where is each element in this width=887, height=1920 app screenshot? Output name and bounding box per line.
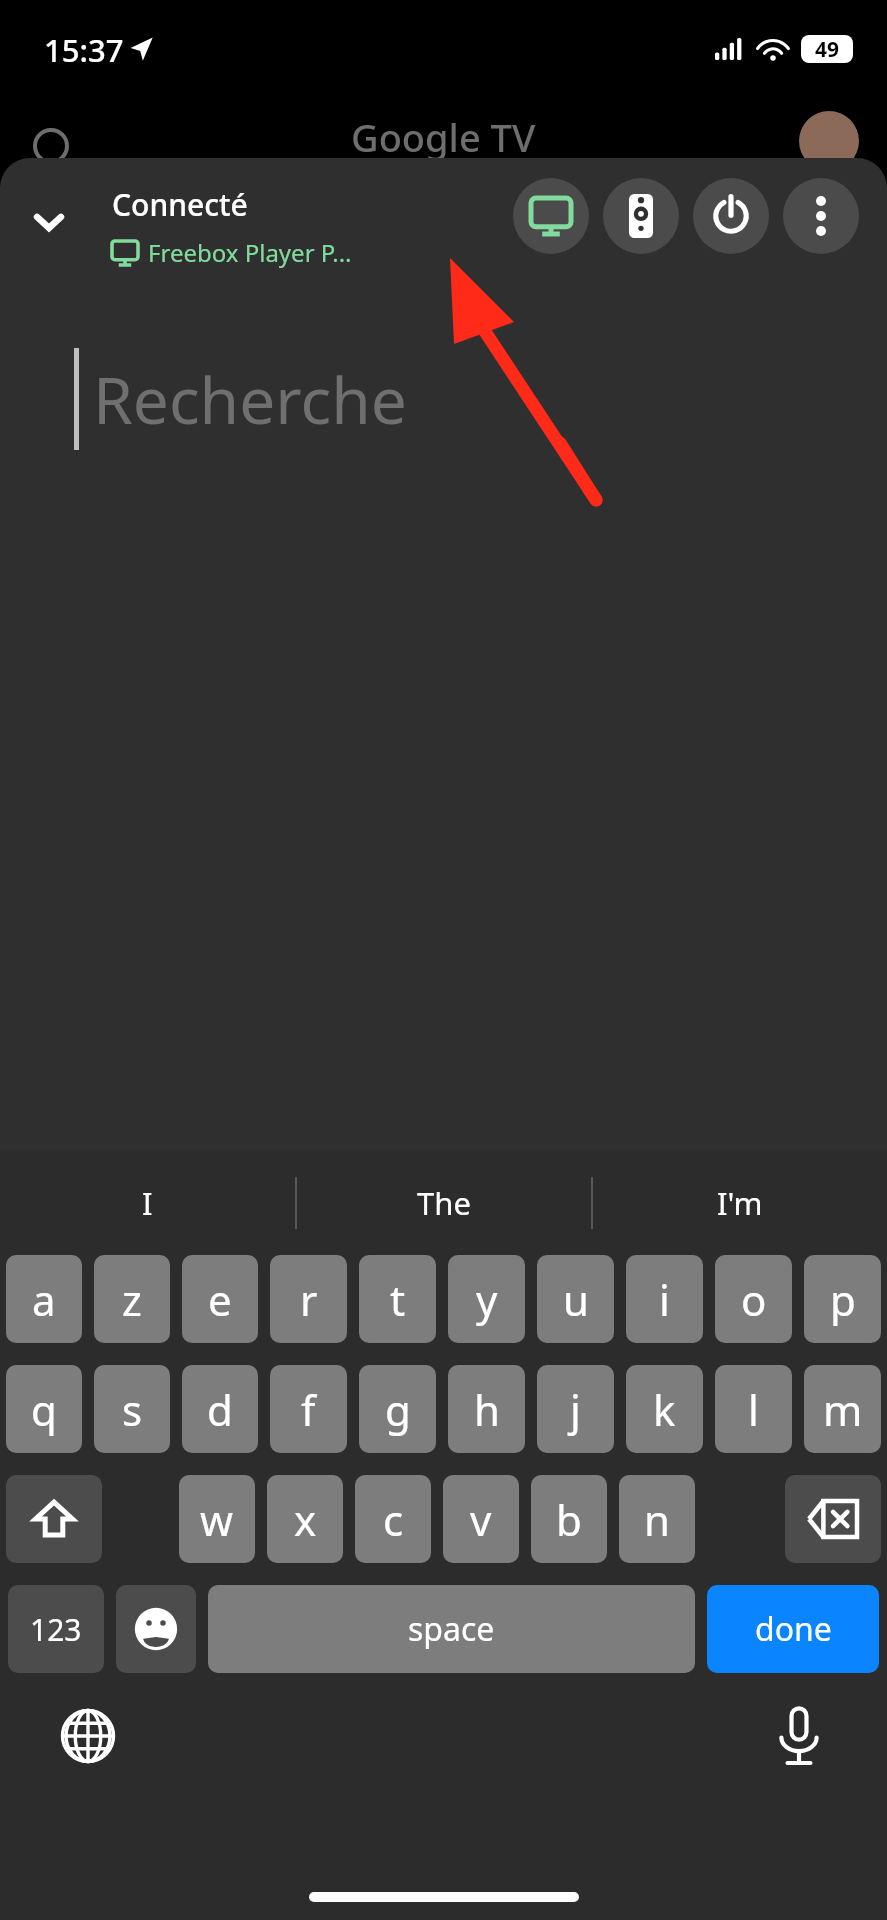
button[interactable]: r — [270, 1255, 347, 1343]
button[interactable]: c — [355, 1475, 431, 1563]
button[interactable]: 123 — [8, 1585, 104, 1673]
button[interactable]: f — [270, 1365, 347, 1453]
staticText: v — [470, 1491, 492, 1548]
button[interactable]: done — [707, 1585, 879, 1673]
staticText: h — [474, 1381, 500, 1438]
button[interactable]: I — [0, 1150, 295, 1255]
staticText: done — [755, 1607, 832, 1651]
button[interactable]: k — [626, 1365, 703, 1453]
staticText: d — [207, 1381, 233, 1438]
staticText: Google TV — [351, 111, 536, 163]
staticText: y — [476, 1271, 498, 1328]
staticText: l — [748, 1381, 759, 1438]
button[interactable]: j — [537, 1365, 614, 1453]
button[interactable]: h — [448, 1365, 525, 1453]
button[interactable]: t — [359, 1255, 436, 1343]
staticText: Freebox Player P... — [148, 236, 352, 269]
staticText: 123 — [30, 1609, 82, 1650]
button[interactable]: Marche / Arrêt — [693, 178, 769, 254]
staticText: r — [300, 1271, 318, 1328]
button[interactable]: Connecté — [112, 184, 248, 225]
staticText: space — [408, 1607, 495, 1651]
button[interactable]: z — [94, 1255, 170, 1343]
button[interactable]: Emoji — [116, 1585, 196, 1673]
button[interactable]: i — [626, 1255, 703, 1343]
staticText: w — [200, 1491, 234, 1548]
button[interactable]: u — [537, 1255, 614, 1343]
button[interactable]: Télécommande — [603, 178, 679, 254]
button[interactable]: w — [179, 1475, 255, 1563]
staticText: x — [294, 1491, 317, 1548]
staticText: c — [383, 1491, 404, 1548]
button[interactable]: d — [182, 1365, 258, 1453]
staticText: s — [122, 1381, 143, 1438]
staticText: g — [385, 1381, 411, 1438]
button[interactable]: The — [297, 1150, 591, 1255]
button[interactable]: g — [359, 1365, 436, 1453]
button[interactable]: e — [182, 1255, 258, 1343]
staticText: p — [830, 1271, 856, 1328]
button[interactable]: y — [448, 1255, 525, 1343]
staticText: j — [570, 1381, 581, 1438]
button[interactable]: Retour arrière — [785, 1475, 881, 1563]
button[interactable]: b — [531, 1475, 607, 1563]
staticText: m — [823, 1381, 863, 1438]
staticText: n — [644, 1491, 670, 1548]
button[interactable]: o — [715, 1255, 792, 1343]
staticText: a — [32, 1271, 56, 1328]
staticText: o — [741, 1271, 767, 1328]
button[interactable]: v — [443, 1475, 519, 1563]
staticText: k — [653, 1381, 676, 1438]
staticText: I — [142, 1182, 153, 1224]
button[interactable]: n — [619, 1475, 695, 1563]
staticText: f — [301, 1381, 316, 1438]
staticText: e — [208, 1271, 232, 1328]
button[interactable]: s — [94, 1365, 170, 1453]
button[interactable]: Changer de clavier — [50, 1698, 126, 1774]
staticText: i — [659, 1271, 670, 1328]
button[interactable]: Réduire — [18, 191, 80, 253]
staticText: Recherche — [93, 356, 407, 443]
staticText: I'm — [717, 1182, 763, 1224]
button[interactable]: q — [6, 1365, 82, 1453]
button[interactable]: I'm — [593, 1150, 887, 1255]
button[interactable]: a — [6, 1255, 82, 1343]
button[interactable]: Dictée — [761, 1698, 837, 1774]
button[interactable]: Majuscule — [6, 1475, 102, 1563]
staticText: b — [556, 1491, 582, 1548]
button[interactable]: l — [715, 1365, 792, 1453]
button[interactable]: Écran — [513, 178, 589, 254]
button[interactable]: Plus d'options — [783, 178, 859, 254]
button[interactable]: p — [804, 1255, 881, 1343]
staticText: z — [122, 1271, 142, 1328]
staticText: t — [390, 1271, 406, 1328]
button[interactable]: m — [804, 1365, 881, 1453]
button[interactable]: space — [208, 1585, 695, 1673]
staticText: q — [31, 1381, 57, 1438]
staticText: u — [563, 1271, 589, 1328]
staticText: 49 — [815, 35, 840, 63]
button[interactable]: x — [267, 1475, 343, 1563]
staticText: 15:37 — [44, 29, 124, 71]
staticText: The — [417, 1182, 471, 1224]
